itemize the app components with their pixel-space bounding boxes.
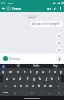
button[interactable]: d	[17, 75, 24, 82]
staticText: i	[49, 69, 50, 74]
button[interactable]: p	[58, 68, 64, 75]
button[interactable]: r	[21, 68, 28, 75]
staticText: Are we on for tonight?	[32, 22, 61, 26]
staticText: s	[13, 76, 15, 81]
button[interactable]: f	[24, 75, 31, 82]
staticText: w	[9, 69, 12, 74]
button[interactable]: n	[42, 82, 48, 89]
staticText: Hi	[17, 64, 20, 68]
staticText: x	[20, 83, 22, 88]
staticText: b	[38, 83, 41, 88]
button[interactable]: q	[0, 68, 7, 75]
staticText: m	[49, 83, 53, 88]
button[interactable]: o	[52, 68, 58, 75]
button[interactable]: More options	[58, 6, 63, 11]
staticText: f	[27, 76, 29, 81]
button[interactable]: Emoji	[11, 89, 18, 96]
staticText: v	[32, 83, 34, 88]
button[interactable]: b	[36, 82, 42, 89]
staticText: l	[58, 76, 59, 81]
button[interactable]: j	[43, 75, 49, 82]
staticText: c	[26, 83, 28, 88]
staticText: k	[51, 76, 53, 81]
staticText: ?123	[3, 91, 8, 94]
staticText: r	[24, 69, 26, 74]
staticText: h	[39, 76, 42, 81]
staticText: n	[44, 83, 47, 88]
button[interactable]: s	[10, 75, 17, 82]
button[interactable]: y	[34, 68, 40, 75]
button[interactable]: .	[46, 89, 53, 96]
button[interactable]: Shift	[0, 82, 11, 89]
staticText: a	[6, 76, 8, 81]
staticText: e	[17, 69, 19, 74]
staticText: q	[2, 69, 5, 74]
staticText: Hey	[53, 64, 58, 68]
staticText: y	[36, 69, 38, 74]
button[interactable]: e	[14, 68, 21, 75]
staticText: t	[30, 69, 32, 74]
button[interactable]: Backspace	[54, 82, 64, 89]
button[interactable]: Camera	[56, 33, 61, 38]
staticText: g	[33, 76, 36, 81]
button[interactable]: Space	[18, 89, 46, 96]
button[interactable]: Are we on for tonight?	[31, 21, 62, 27]
button[interactable]: m	[48, 82, 54, 89]
button[interactable]: Voice message	[56, 56, 62, 62]
button[interactable]: w	[7, 68, 14, 75]
button[interactable]: g	[31, 75, 37, 82]
button[interactable]: i	[46, 68, 52, 75]
button[interactable]: k	[49, 75, 55, 82]
staticText: Hello	[33, 64, 40, 68]
staticText: p	[60, 69, 63, 74]
button[interactable]: Attach	[56, 47, 61, 52]
button[interactable]: h	[37, 75, 43, 82]
staticText: z	[14, 83, 16, 88]
staticText: j	[46, 76, 47, 81]
staticText: u	[42, 69, 45, 74]
button[interactable]: Enter	[53, 89, 64, 96]
button[interactable]: v	[30, 82, 36, 89]
button[interactable]: t	[28, 68, 34, 75]
button[interactable]: z	[11, 82, 18, 89]
button[interactable]: Call	[52, 6, 58, 12]
button[interactable]: Message	[2, 55, 55, 62]
staticText: .	[49, 90, 50, 95]
button[interactable]: Video call	[46, 6, 52, 12]
staticText: 9:41	[8, 1, 13, 4]
staticText: TODAY	[28, 15, 36, 18]
button[interactable]: u	[40, 68, 46, 75]
button[interactable]: x	[18, 82, 24, 89]
staticText: d	[19, 76, 22, 81]
staticText: Emma	[12, 7, 22, 11]
button[interactable]: ?123	[0, 89, 11, 96]
button[interactable]: Gallery	[56, 40, 61, 45]
button[interactable]: Back	[1, 6, 6, 11]
button[interactable]: c	[24, 82, 30, 89]
staticText: Message	[9, 57, 21, 61]
staticText: o	[54, 69, 57, 74]
button[interactable]: l	[55, 75, 61, 82]
button[interactable]: a	[3, 75, 10, 82]
